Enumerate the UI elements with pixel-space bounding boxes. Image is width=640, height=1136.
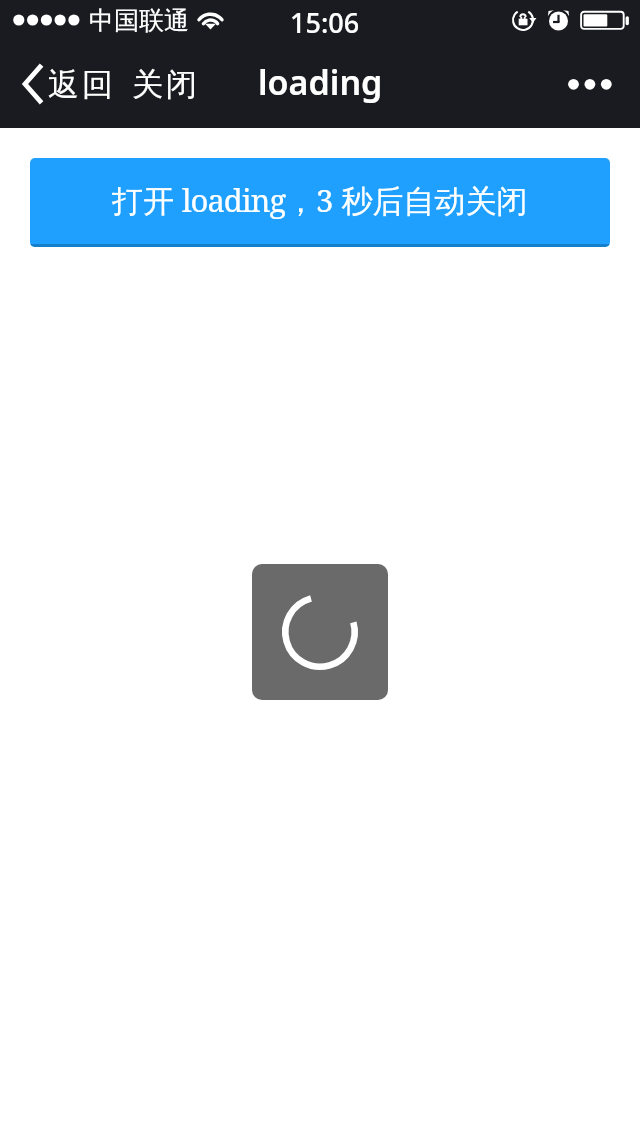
staticText: loading — [258, 59, 383, 105]
button[interactable]: 返回 Back — [18, 62, 116, 106]
staticText: 中国联通 — [89, 5, 189, 36]
button[interactable]: More options — [556, 52, 630, 116]
staticText: 打开 loading，3 秒后自动关闭 — [112, 179, 528, 221]
button[interactable]: 打开 loading，3 秒后自动关闭 — [30, 158, 610, 247]
staticText: 返回 — [48, 65, 116, 104]
staticText: 关闭 — [132, 65, 200, 104]
button[interactable]: 关闭 — [132, 65, 200, 104]
staticText: 15:06 — [290, 4, 360, 41]
